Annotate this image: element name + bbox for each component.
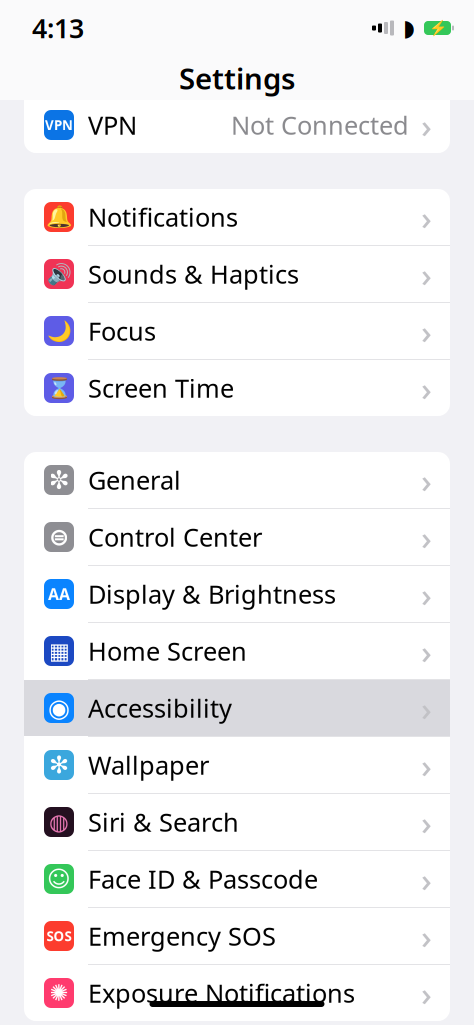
staticText: Focus <box>88 314 156 348</box>
staticText: › <box>421 309 432 353</box>
button[interactable]: AA <box>24 566 450 623</box>
staticText: 4:13 <box>32 10 84 46</box>
staticText: ◉ <box>48 694 70 722</box>
button[interactable]: ◉ <box>24 680 450 737</box>
staticText: ✻ <box>49 751 69 779</box>
staticText: 🌙 <box>46 320 71 342</box>
staticText: ⌛ <box>46 377 71 399</box>
staticText: › <box>421 800 432 844</box>
staticText: › <box>421 971 432 1015</box>
staticText: ▦ <box>48 638 69 664</box>
staticText: ◗ <box>403 15 415 41</box>
staticText: Face ID & Passcode <box>88 862 318 896</box>
staticText: VPN <box>45 116 73 134</box>
staticText: Personal Hotspot <box>88 51 293 85</box>
staticText: AA <box>48 583 70 605</box>
button[interactable]: 🔊 <box>24 246 450 303</box>
staticText: SOS <box>46 927 71 945</box>
staticText: VPN <box>88 108 137 142</box>
staticText: Control Center <box>88 520 262 554</box>
staticText: Emergency SOS <box>88 919 276 953</box>
staticText: ⊜ <box>49 523 69 551</box>
button[interactable]: ◍ <box>24 794 450 851</box>
staticText: › <box>421 103 432 147</box>
button[interactable]: 🔔 <box>24 189 450 246</box>
staticText: ✼ <box>48 466 69 494</box>
button[interactable]: ✻ <box>24 737 450 794</box>
button[interactable]: VPN <box>24 97 450 153</box>
staticText: ◍ <box>49 809 69 835</box>
staticText: Siri & Search <box>88 805 239 839</box>
staticText: › <box>421 458 432 502</box>
button[interactable]: SOS <box>24 908 450 965</box>
button[interactable]: ⇄ <box>24 40 450 97</box>
staticText: Screen Time <box>88 371 234 405</box>
button[interactable]: ▦ <box>24 623 450 680</box>
staticText: 🔔 <box>45 205 72 229</box>
staticText: › <box>421 366 432 410</box>
staticText: › <box>421 743 432 787</box>
staticText: Notifications <box>88 200 238 234</box>
staticText: Sounds & Haptics <box>88 257 299 291</box>
staticText: › <box>421 195 432 239</box>
button[interactable]: ⊜ <box>24 509 450 566</box>
staticText: ⚡ <box>428 20 446 36</box>
staticText: › <box>421 914 432 958</box>
staticText: Settings <box>179 58 295 97</box>
staticText: › <box>421 515 432 559</box>
staticText: General <box>88 463 181 497</box>
staticText: › <box>421 857 432 901</box>
staticText: ☺ <box>47 866 71 892</box>
staticText: ✺ <box>49 980 68 1006</box>
staticText: Exposure Notifications <box>88 976 355 1010</box>
staticText: Display & Brightness <box>88 577 336 611</box>
button[interactable]: 🌙 <box>24 303 450 360</box>
staticText: Accessibility <box>88 691 232 725</box>
staticText: 🔊 <box>46 263 71 285</box>
staticText: Home Screen <box>88 634 247 668</box>
staticText: › <box>421 252 432 296</box>
staticText: › <box>421 629 432 673</box>
button[interactable]: ✺ <box>24 965 450 1021</box>
staticText: Wallpaper <box>88 748 209 782</box>
button[interactable]: ✼ <box>24 452 450 509</box>
button[interactable]: ⌛ <box>24 360 450 416</box>
staticText: › <box>421 686 432 730</box>
staticText: Not Connected <box>231 108 409 142</box>
button[interactable]: ☺ <box>24 851 450 908</box>
staticText: › <box>421 572 432 616</box>
